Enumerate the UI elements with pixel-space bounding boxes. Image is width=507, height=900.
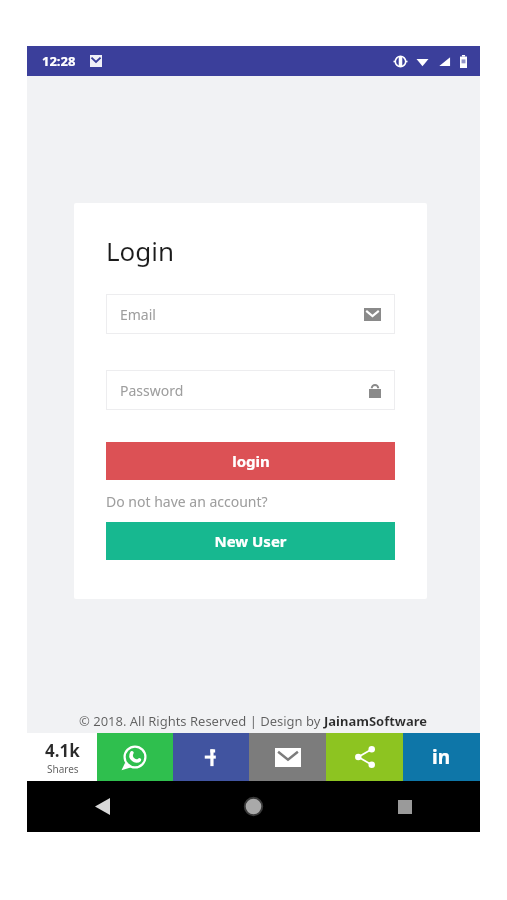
staticText: in [432,744,451,770]
button[interactable]: Password [106,370,395,410]
staticText: 4.1k [45,739,80,762]
button[interactable]: Home [178,781,329,832]
staticText: 12:28 [42,52,76,70]
button[interactable]: 4.1k [27,733,97,781]
staticText: Login [106,233,175,268]
button[interactable]: Do not have an account? [106,492,268,511]
staticText: Password [120,381,369,400]
button[interactable]: New User [106,522,395,560]
staticText: JainamSoftware [324,712,428,730]
button[interactable]: Share by email [249,733,326,781]
button[interactable]: Share on Facebook [173,733,249,781]
button[interactable]: login [106,442,395,480]
staticText: login [232,451,270,471]
staticText: Email [120,305,364,324]
button[interactable]: Share [326,733,403,781]
button[interactable]: Back [27,781,178,832]
staticText: © 2018. All Rights Reserved | Design by [79,712,324,730]
button[interactable]: Share on WhatsApp [97,733,173,781]
button[interactable]: Email [106,294,395,334]
button[interactable]: Share on LinkedIn [403,733,480,781]
staticText: New User [214,531,287,551]
staticText: Shares [47,762,79,776]
button[interactable]: Recent apps [329,781,480,832]
